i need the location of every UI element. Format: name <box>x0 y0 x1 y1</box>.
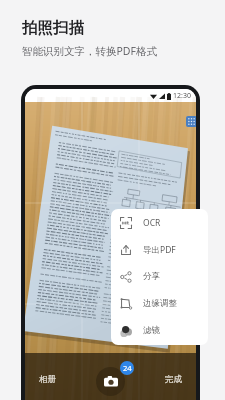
button[interactable]: 完成 <box>159 370 188 389</box>
staticText: 分享 <box>143 271 160 282</box>
staticText: 边缘调整 <box>143 298 177 309</box>
staticText: 12:30 <box>173 91 191 101</box>
staticText: 完成 <box>165 374 182 385</box>
staticText: OCR <box>143 217 161 229</box>
button[interactable]: 分享 <box>111 263 208 290</box>
staticText: 24 <box>123 363 132 373</box>
button[interactable]: 滤镜 <box>111 317 208 344</box>
staticText: 拍照扫描 <box>22 18 84 38</box>
button[interactable]: Grid <box>186 116 196 127</box>
staticText: 智能识别文字，转换PDF格式 <box>22 44 157 58</box>
button[interactable]: OCR <box>111 209 208 236</box>
staticText: 导出PDF <box>143 244 176 256</box>
button[interactable]: 导出PDF <box>111 236 208 263</box>
staticText: 相册 <box>39 374 56 385</box>
staticText: 滤镜 <box>143 325 160 336</box>
button[interactable]: 边缘调整 <box>111 290 208 317</box>
button[interactable]: 相册 <box>33 370 62 389</box>
button[interactable]: Capture <box>96 367 125 396</box>
